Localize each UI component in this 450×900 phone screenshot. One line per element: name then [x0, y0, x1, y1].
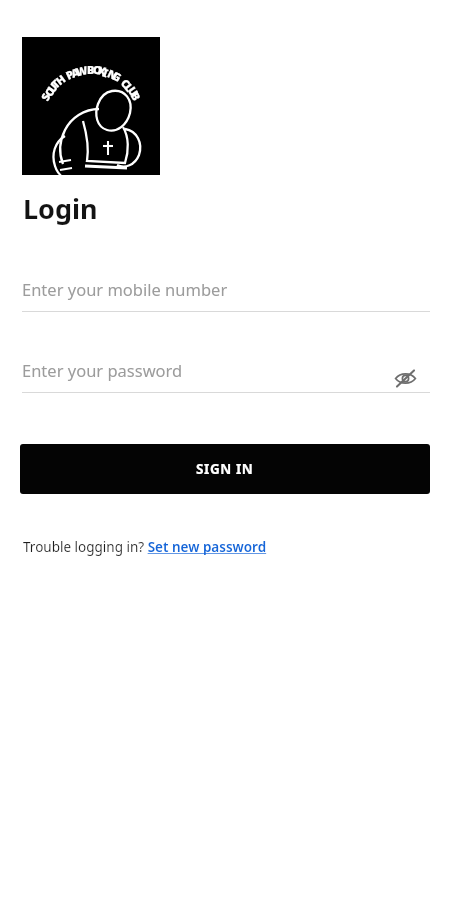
staticText: Login [23, 190, 98, 227]
staticText: S [37, 90, 54, 103]
staticText: L [121, 80, 137, 95]
staticText: B [127, 89, 144, 103]
staticText: Trouble logging in? Set new password [23, 538, 267, 556]
staticText: P [63, 66, 76, 83]
button[interactable]: SIGN IN [20, 444, 430, 494]
staticText: T [48, 76, 63, 91]
staticText: Enter your mobile number [22, 278, 228, 300]
staticText: O [41, 84, 58, 99]
staticText: W [74, 62, 89, 79]
button[interactable]: Enter your mobile number [22, 278, 430, 312]
button[interactable]: Trouble logging in? Set new password [23, 538, 267, 556]
staticText: O [92, 62, 103, 77]
staticText: U [44, 79, 61, 96]
staticText: H [52, 71, 69, 88]
staticText: C [118, 75, 134, 92]
staticText: U [125, 84, 142, 99]
staticText: Enter your password [22, 359, 183, 381]
staticText: I [101, 65, 110, 80]
button[interactable]: Enter your password [22, 359, 430, 393]
staticText: B [87, 62, 95, 77]
staticText: SIGN IN [196, 460, 254, 478]
staticText: N [105, 66, 121, 83]
staticText: X [96, 62, 107, 79]
button[interactable]: Show password [387, 360, 423, 396]
staticText: A [69, 64, 81, 81]
staticText: G [110, 68, 125, 85]
